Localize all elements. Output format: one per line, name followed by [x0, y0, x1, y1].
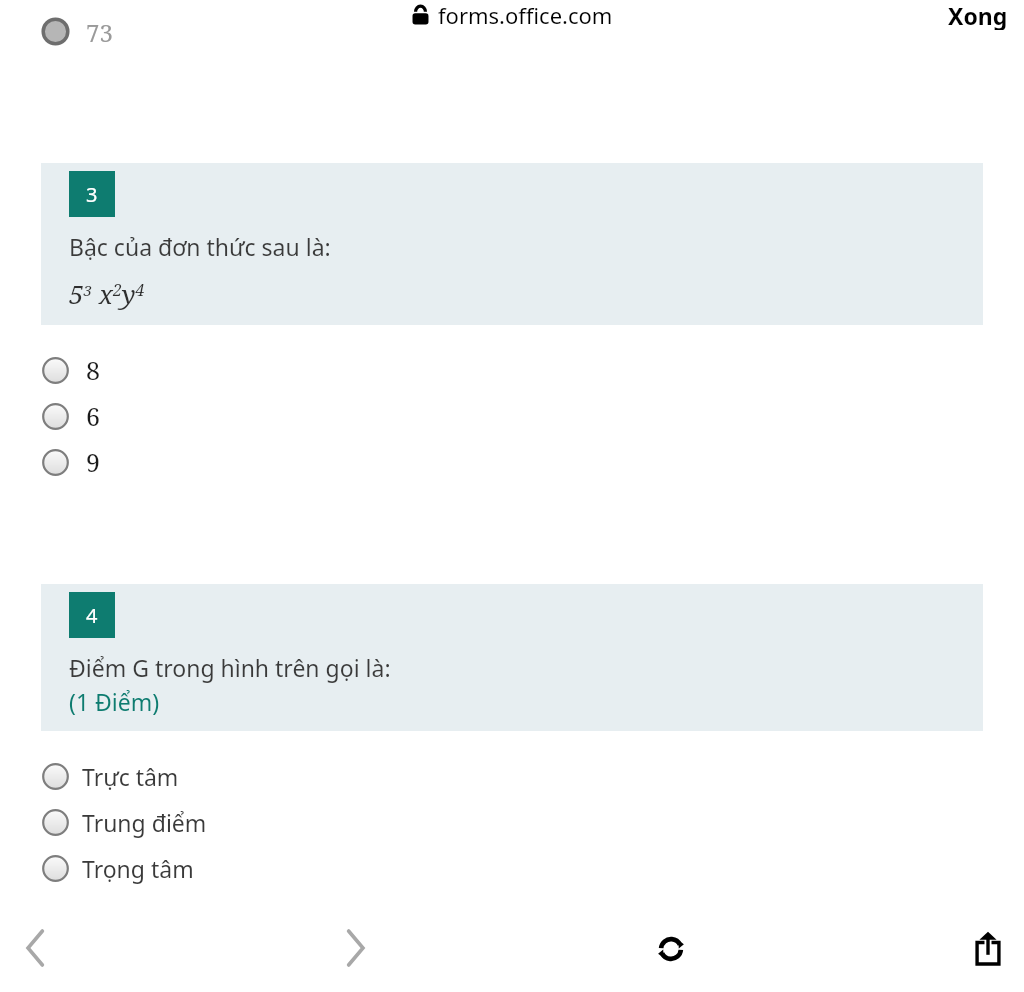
staticText: 8 [86, 353, 100, 387]
staticText: forms.office.com [438, 0, 613, 30]
staticText: Trực tâm [82, 761, 179, 792]
staticText: (1 Điểm) [69, 686, 160, 717]
staticText: Trung điểm [82, 807, 207, 838]
button[interactable]: Trung điểm [0, 799, 1024, 845]
staticText: 9 [86, 445, 100, 479]
button[interactable]: Refresh [643, 921, 699, 977]
button[interactable]: 6 [0, 393, 1024, 439]
button[interactable]: 4 [41, 584, 983, 731]
staticText: Trọng tâm [82, 853, 194, 884]
staticText: 6 [86, 399, 100, 433]
staticText: 4 [86, 602, 98, 629]
button[interactable]: Share [960, 920, 1016, 976]
staticText: 53 x2y4 [69, 276, 145, 311]
button[interactable]: Back [8, 920, 64, 976]
staticText: Xong [948, 0, 1008, 30]
button[interactable]: Xong [948, 0, 1024, 30]
staticText: Điểm G trong hình trên gọi là: [69, 652, 391, 683]
button[interactable]: Trực tâm [0, 753, 1024, 799]
button[interactable]: 73 [0, 30, 1024, 60]
staticText: 3 [86, 181, 98, 208]
button[interactable]: 3 [41, 163, 983, 325]
button[interactable]: 8 [0, 347, 1024, 393]
staticText: Bậc của đơn thức sau là: [69, 231, 331, 262]
button[interactable]: 9 [0, 439, 1024, 485]
staticText: 73 [86, 16, 113, 46]
button[interactable]: Forward [327, 920, 383, 976]
button[interactable]: forms.office.com [411, 0, 613, 30]
button[interactable]: Trọng tâm [0, 845, 1024, 891]
